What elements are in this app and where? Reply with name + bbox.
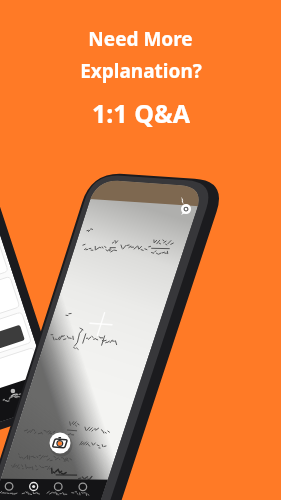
staticText: 1:1 Q&A [92, 96, 190, 130]
staticText: Explanation? [80, 58, 202, 84]
staticText: Need More [88, 26, 193, 52]
